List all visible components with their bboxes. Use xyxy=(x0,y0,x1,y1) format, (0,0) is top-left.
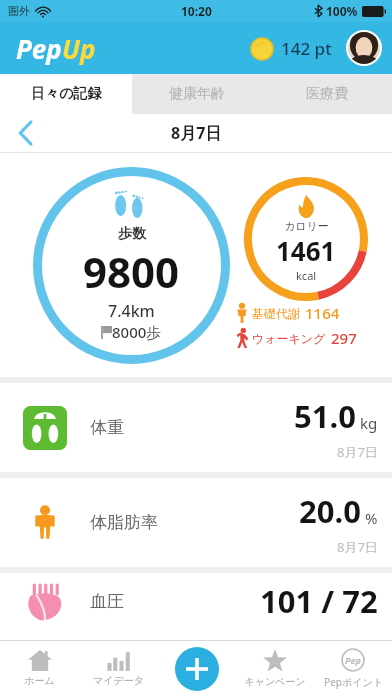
staticText: % xyxy=(365,508,378,528)
staticText: 101 / 72 xyxy=(260,580,378,622)
button[interactable]: キャンペーン xyxy=(236,641,314,696)
staticText: 100% xyxy=(326,3,358,19)
button[interactable]: 体脂肪率 xyxy=(0,478,392,567)
staticText: Up xyxy=(62,31,96,66)
button[interactable]: 血圧 xyxy=(0,573,392,629)
button[interactable]: Profile xyxy=(346,30,382,66)
staticText: 20.0 xyxy=(299,490,361,532)
button[interactable]: 歩数 xyxy=(33,167,230,364)
staticText: 51.0 xyxy=(294,395,356,437)
button[interactable]: 健康年齢 xyxy=(132,74,262,114)
button[interactable]: カロリー xyxy=(244,177,368,301)
button[interactable]: マイデータ xyxy=(79,641,158,696)
button[interactable]: ホーム xyxy=(0,641,79,696)
button[interactable]: Previous day xyxy=(8,115,44,151)
staticText: 歩数 xyxy=(118,225,146,243)
button[interactable]: 日々の記録 xyxy=(0,74,132,114)
staticText: 8月7日 xyxy=(337,443,378,461)
button[interactable]: Add record xyxy=(158,641,236,696)
staticText: 血圧 xyxy=(90,591,124,612)
staticText: kcal xyxy=(296,268,317,283)
button[interactable]: 医療費 xyxy=(262,74,392,114)
staticText: Pep xyxy=(345,654,361,666)
staticText: 健康年齢 xyxy=(169,85,225,103)
staticText: 体重 xyxy=(90,417,124,438)
staticText: カロリー xyxy=(284,219,329,233)
staticText: 8月7日 xyxy=(337,538,378,556)
staticText: ウォーキング xyxy=(252,331,326,346)
staticText: 7.4km xyxy=(108,300,155,322)
staticText: 8000歩 xyxy=(112,322,162,342)
staticText: 基礎代謝 xyxy=(252,306,300,321)
staticText: 297 xyxy=(331,328,357,348)
staticText: 10:20 xyxy=(181,3,212,19)
button[interactable]: 142 pt xyxy=(247,33,336,64)
staticText: キャンペーン xyxy=(244,675,306,688)
staticText: Pepポイント xyxy=(324,675,383,689)
staticText: kg xyxy=(360,413,378,433)
button[interactable]: Pep xyxy=(314,641,392,696)
staticText: ホーム xyxy=(24,674,55,687)
staticText: マイデータ xyxy=(93,674,144,687)
button[interactable]: 体重 xyxy=(0,383,392,472)
staticText: 8月7日 xyxy=(171,122,222,144)
staticText: 医療費 xyxy=(306,85,348,103)
staticText: 142 pt xyxy=(281,37,332,60)
staticText: Pep xyxy=(16,31,62,66)
staticText: 体脂肪率 xyxy=(90,512,158,533)
staticText: 9800 xyxy=(83,243,180,300)
staticText: 1164 xyxy=(305,303,340,323)
staticText: 1461 xyxy=(276,233,336,268)
staticText: 日々の記録 xyxy=(31,85,102,103)
staticText: 圏外 xyxy=(8,4,30,18)
